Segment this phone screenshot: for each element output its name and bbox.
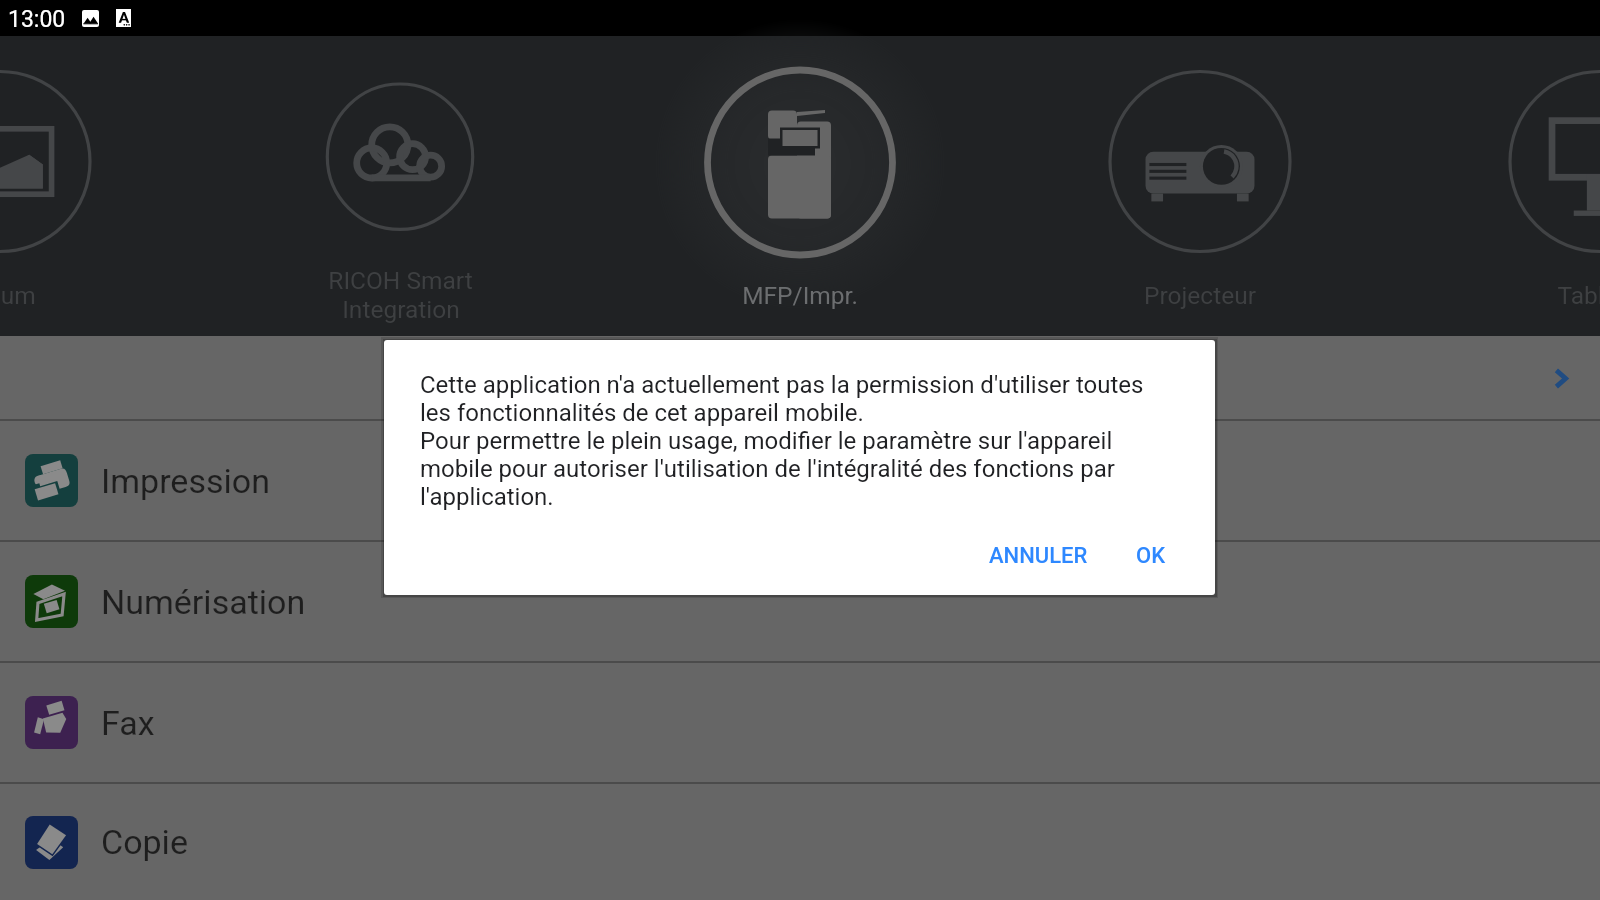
staticText: ANNULER xyxy=(989,543,1088,569)
button[interactable]: Copie xyxy=(0,784,1600,900)
staticText: Impression xyxy=(101,461,270,501)
staticText: Tableau xyxy=(1557,281,1600,310)
other: Screenshot xyxy=(82,10,99,27)
button[interactable]: ANNULER xyxy=(975,533,1102,579)
staticText: Numérisation xyxy=(101,582,306,622)
button[interactable]: Numérisation xyxy=(0,542,1600,661)
staticText: Projecteur xyxy=(1144,281,1256,310)
button[interactable]: RICOH Smart Integration xyxy=(230,44,570,332)
staticText: Album xyxy=(0,281,36,310)
button[interactable]: OK xyxy=(1122,533,1180,579)
button[interactable]: Album xyxy=(0,44,170,332)
staticText: Integration xyxy=(342,295,460,324)
staticText: RICOH Smart xyxy=(328,266,473,295)
staticText: Fax xyxy=(101,703,155,743)
staticText: 13:00 xyxy=(8,6,66,33)
staticText: OK xyxy=(1136,543,1166,569)
other: Keyboard language xyxy=(116,9,131,27)
other: Device details xyxy=(1554,368,1568,389)
button[interactable]: Fax xyxy=(0,663,1600,782)
button[interactable]: Device details xyxy=(0,336,1600,419)
button[interactable]: Tableau xyxy=(1430,44,1600,332)
button[interactable]: Projecteur xyxy=(1030,44,1370,332)
staticText: Cette application n'a actuellement pas l… xyxy=(420,371,1160,511)
button[interactable]: Impression xyxy=(0,421,1600,540)
staticText: MFP/Impr. xyxy=(742,281,858,310)
staticText: Copie xyxy=(101,822,188,862)
button[interactable]: MFP/Impr. xyxy=(630,44,970,332)
